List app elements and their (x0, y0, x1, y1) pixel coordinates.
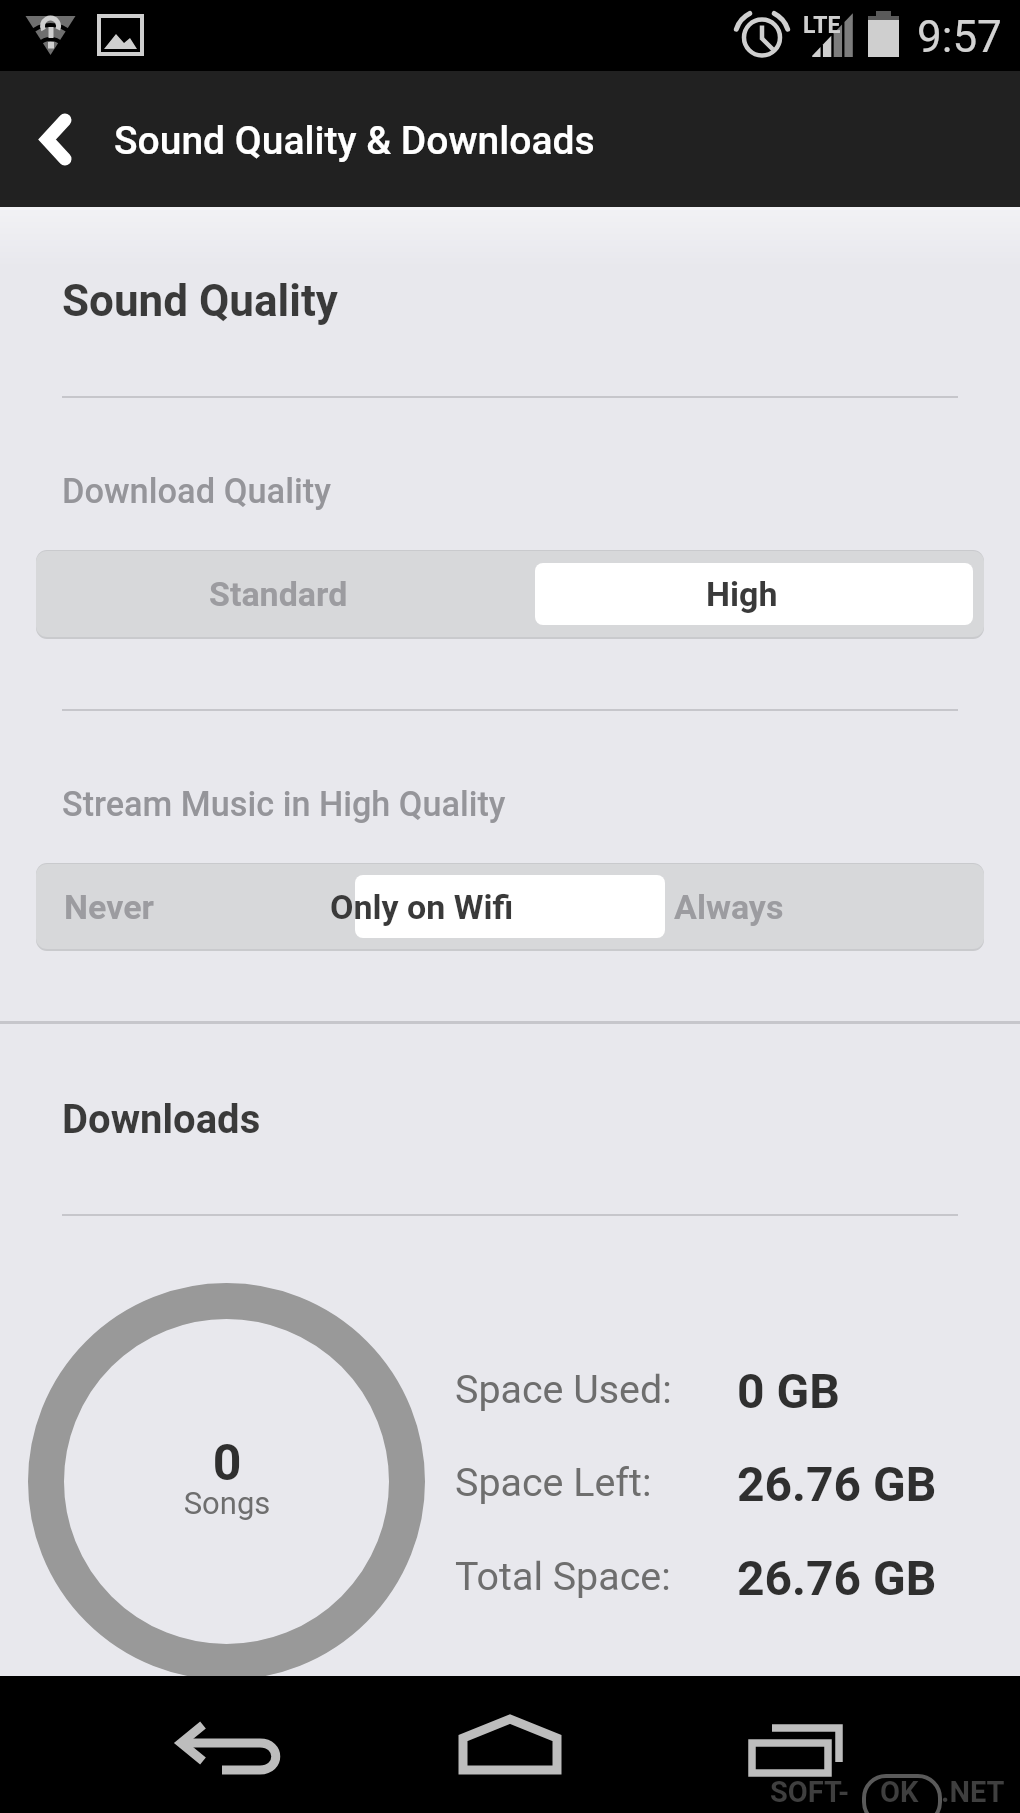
staticText: 26.76 GB (737, 1550, 937, 1606)
button[interactable]: Navigate up (6, 79, 114, 187)
staticText: Downloads (62, 1096, 261, 1143)
staticText: SOFT- (770, 1775, 850, 1809)
staticText: Standard (209, 574, 348, 614)
button[interactable]: Back (0, 1676, 340, 1813)
staticText: Space Left: (455, 1459, 652, 1505)
staticText: 9:57 (917, 11, 1002, 63)
staticText: OK (880, 1775, 919, 1809)
staticText: Stream Music in High Quality (62, 784, 506, 824)
staticText: 0 GB (737, 1363, 840, 1419)
staticText: Never (64, 887, 154, 927)
staticText: Only on Wifi (330, 887, 514, 927)
staticText: Songs (107, 1485, 347, 1521)
staticText: Sound Quality & Downloads (114, 118, 595, 164)
button[interactable]: Recent apps (680, 1676, 1020, 1813)
staticText: .NET (941, 1775, 1005, 1809)
staticText: Space Used: (455, 1366, 672, 1412)
staticText: Total Space: (455, 1553, 671, 1599)
button[interactable]: Home (340, 1676, 680, 1813)
staticText: Always (674, 887, 784, 927)
staticText: 0 (107, 1434, 347, 1493)
button[interactable]: High (510, 551, 984, 637)
staticText: Download Quality (62, 471, 331, 511)
button[interactable]: Never (36, 864, 352, 949)
staticText: LTE (803, 12, 841, 39)
button[interactable]: Standard (36, 551, 510, 637)
button[interactable]: Only on Wifi (352, 864, 668, 949)
staticText: Sound Quality (62, 275, 338, 327)
staticText: 26.76 GB (737, 1456, 937, 1512)
button[interactable]: Always (668, 864, 984, 949)
staticText: High (706, 574, 778, 614)
